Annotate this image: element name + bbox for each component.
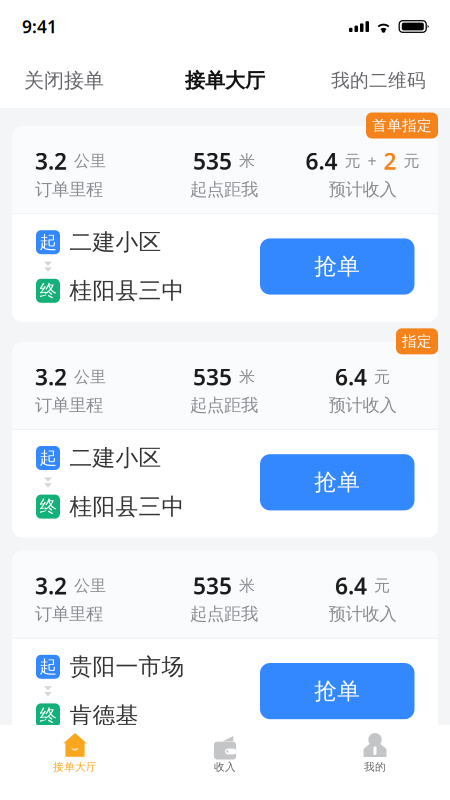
button[interactable]: 我的二维码 <box>331 69 426 92</box>
staticText: 公里 <box>74 151 106 171</box>
staticText: 起点距我 <box>190 179 258 200</box>
staticText: 起 <box>39 447 56 469</box>
staticText: 535 <box>193 362 232 392</box>
button[interactable]: 关闭接单 <box>24 68 104 93</box>
staticText: 公里 <box>74 367 106 387</box>
staticText: 抢单 <box>314 468 360 496</box>
staticText: 3.2 <box>35 146 67 176</box>
staticText: 桂阳县三中 <box>69 493 184 520</box>
staticText: 终 <box>39 705 56 726</box>
staticText: 起 <box>39 232 56 253</box>
staticText: 预计收入 <box>328 395 396 416</box>
button[interactable]: 收入 <box>150 725 300 800</box>
staticText: 元 <box>374 576 390 595</box>
staticText: 6.4 <box>335 362 367 392</box>
staticText: 订单里程 <box>35 603 103 625</box>
staticText: 预计收入 <box>328 179 396 200</box>
staticText: 3.2 <box>35 570 67 601</box>
staticText: 公里 <box>74 576 106 595</box>
staticText: 肯德基 <box>69 701 138 729</box>
staticText: 2 <box>383 146 396 176</box>
staticText: 535 <box>193 146 232 176</box>
staticText: 我的二维码 <box>331 69 426 92</box>
staticText: 元 <box>403 151 419 171</box>
staticText: 终 <box>39 280 56 301</box>
staticText: 起点距我 <box>190 395 258 416</box>
staticText: 二建小区 <box>69 444 161 472</box>
staticText: 抢单 <box>314 253 360 280</box>
staticText: 订单里程 <box>35 395 103 416</box>
button[interactable]: 我的 <box>300 725 450 800</box>
staticText: 二建小区 <box>69 228 161 256</box>
staticText: 米 <box>239 576 255 595</box>
staticText: 3.2 <box>35 362 67 392</box>
staticText: 抢单 <box>314 677 360 705</box>
staticText: 接单大厅 <box>185 68 265 93</box>
staticText: 元 <box>374 367 390 387</box>
staticText: 收入 <box>214 760 236 773</box>
staticText: 桂阳县三中 <box>69 277 184 305</box>
staticText: 米 <box>239 367 255 387</box>
staticText: 终 <box>39 496 56 517</box>
staticText: 预计收入 <box>328 603 396 625</box>
staticText: 起 <box>39 656 56 677</box>
button[interactable]: 抢单 <box>260 238 414 295</box>
staticText: 米 <box>239 151 255 171</box>
staticText: + <box>367 150 376 172</box>
staticText: 535 <box>193 570 232 601</box>
staticText: 9:41 <box>22 15 57 38</box>
staticText: 我的 <box>364 760 386 773</box>
staticText: 首单指定 <box>372 116 432 134</box>
button[interactable]: 抢单 <box>260 663 414 719</box>
button[interactable]: 抢单 <box>260 454 414 510</box>
staticText: 6.4 <box>335 570 367 601</box>
staticText: 关闭接单 <box>24 68 104 93</box>
staticText: 指定 <box>402 332 432 350</box>
staticText: 6.4 <box>305 146 337 176</box>
staticText: 起点距我 <box>190 603 258 625</box>
staticText: 元 <box>344 151 360 171</box>
button[interactable]: 接单大厅 <box>0 725 150 800</box>
staticText: 订单里程 <box>35 179 103 200</box>
staticText: 接单大厅 <box>53 760 97 773</box>
staticText: 贵阳一市场 <box>69 653 184 681</box>
